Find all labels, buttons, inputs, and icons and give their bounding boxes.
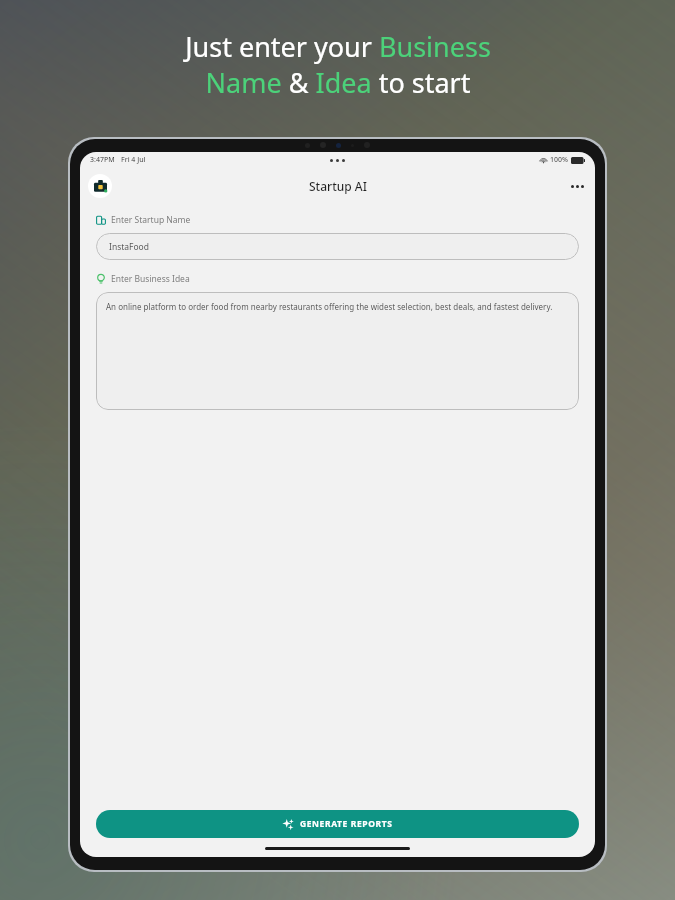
staticText: Startup AI (309, 178, 367, 194)
staticText: 3:47PM (90, 155, 115, 165)
button[interactable]: GENERATE REPORTS (96, 810, 579, 838)
staticText: Enter Startup Name (111, 214, 191, 226)
staticText: Just enter your Business Name & Idea to … (185, 28, 491, 101)
staticText: Fri 4 Jul (121, 155, 146, 165)
button[interactable]: App logo (88, 174, 112, 198)
button[interactable]: An online platform to order food from ne… (96, 292, 579, 410)
staticText: 100% (550, 155, 568, 165)
button[interactable]: InstaFood (96, 233, 579, 260)
staticText: An online platform to order food from ne… (106, 301, 553, 312)
staticText: GENERATE REPORTS (300, 818, 393, 830)
button[interactable]: More options (565, 174, 589, 198)
staticText: InstaFood (109, 241, 149, 253)
staticText: Enter Business Idea (111, 273, 190, 285)
